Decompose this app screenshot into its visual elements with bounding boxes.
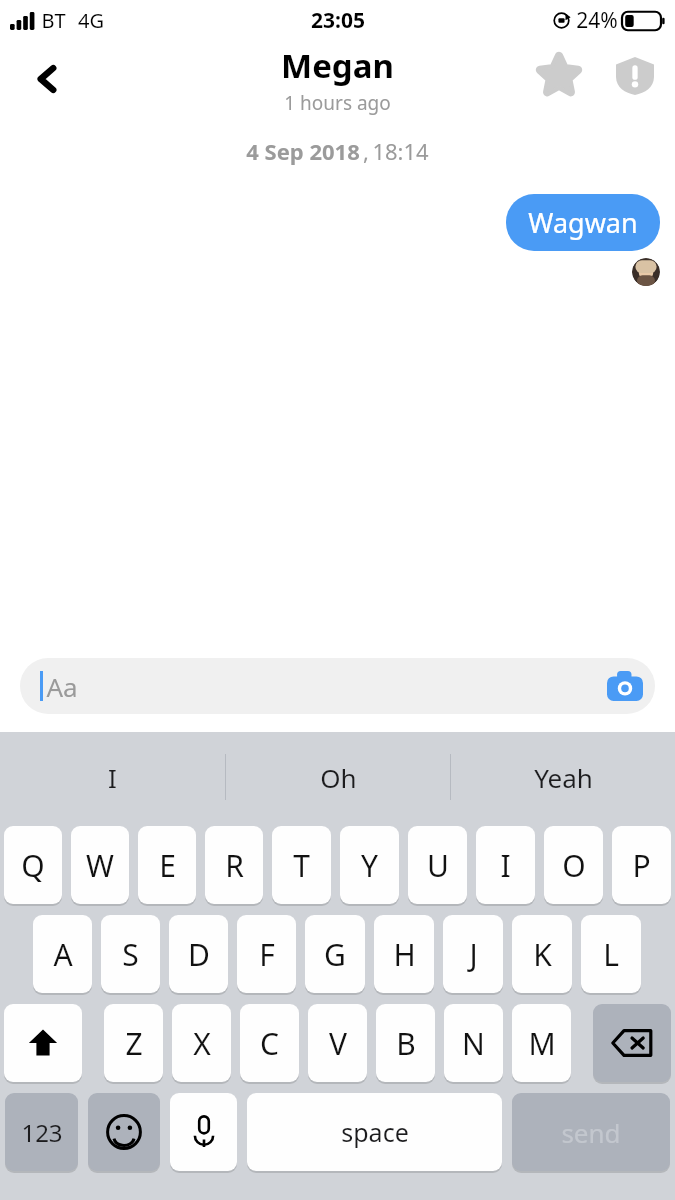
button[interactable]: Back	[22, 53, 74, 105]
button[interactable]: S	[101, 915, 160, 993]
button[interactable]: X	[172, 1004, 231, 1082]
staticText: T	[293, 845, 310, 886]
staticText: Aa	[46, 669, 78, 704]
button[interactable]: M	[512, 1004, 571, 1082]
staticText: S	[122, 934, 139, 975]
staticText: X	[193, 1023, 211, 1064]
button[interactable]: T	[272, 826, 331, 904]
staticText: Z	[125, 1023, 143, 1064]
staticText: 123	[21, 1116, 63, 1149]
button[interactable]: P	[612, 826, 671, 904]
staticText: 18:14	[372, 136, 429, 166]
staticText: 23:05	[311, 6, 365, 35]
staticText: C	[260, 1023, 279, 1064]
staticText: send	[561, 1115, 621, 1150]
button[interactable]: J	[443, 915, 503, 993]
staticText: 4G	[78, 7, 104, 34]
button[interactable]: A	[33, 915, 92, 993]
staticText: Yeah	[534, 760, 593, 795]
button[interactable]: B	[376, 1004, 435, 1082]
button[interactable]: R	[205, 826, 263, 904]
button[interactable]: Camera	[603, 664, 647, 708]
staticText: Oh	[320, 760, 357, 795]
button[interactable]: Z	[104, 1004, 163, 1082]
button[interactable]: I	[0, 732, 225, 822]
staticText: Q	[21, 845, 45, 886]
staticText: Megan	[281, 43, 394, 88]
staticText: Wagwan	[528, 204, 638, 241]
staticText: N	[462, 1023, 485, 1064]
button[interactable]: Aa	[20, 658, 655, 714]
button[interactable]: Wagwan	[506, 194, 660, 251]
staticText: BT	[41, 7, 66, 34]
button[interactable]: Favourite	[531, 48, 587, 104]
staticText: Y	[361, 845, 378, 886]
staticText: V	[329, 1023, 347, 1064]
button[interactable]: Q	[4, 826, 62, 904]
staticText: F	[259, 934, 275, 975]
button[interactable]: Emoji	[88, 1093, 160, 1171]
button[interactable]: K	[512, 915, 572, 993]
button[interactable]: Report	[607, 48, 663, 104]
staticText: E	[159, 845, 176, 886]
button[interactable]: Backspace	[593, 1004, 671, 1082]
staticText: P	[632, 845, 651, 886]
button[interactable]: Voice input	[170, 1093, 237, 1171]
button[interactable]: Oh	[226, 732, 450, 822]
button[interactable]: V	[308, 1004, 367, 1082]
staticText: W	[86, 845, 114, 886]
staticText: G	[324, 934, 346, 975]
button[interactable]: Shift	[4, 1004, 82, 1082]
button[interactable]: L	[581, 915, 641, 993]
button[interactable]: Y	[340, 826, 399, 904]
button[interactable]: C	[240, 1004, 299, 1082]
button[interactable]: U	[408, 826, 467, 904]
button[interactable]: F	[237, 915, 296, 993]
button[interactable]: 123	[5, 1093, 78, 1171]
staticText: R	[225, 845, 244, 886]
button[interactable]: O	[544, 826, 603, 904]
button[interactable]: N	[444, 1004, 503, 1082]
button[interactable]: space	[247, 1093, 502, 1171]
staticText: O	[562, 845, 586, 886]
button[interactable]: G	[305, 915, 365, 993]
staticText: B	[396, 1023, 416, 1064]
staticText: J	[469, 934, 478, 975]
staticText: L	[603, 934, 619, 975]
staticText: 1 hours ago	[284, 90, 391, 116]
staticText: H	[393, 934, 416, 975]
staticText: I	[108, 760, 117, 795]
staticText: A	[53, 934, 73, 975]
staticText: space	[341, 1115, 409, 1149]
staticText: ,	[360, 136, 372, 166]
staticText: U	[427, 845, 449, 886]
staticText: K	[533, 934, 552, 975]
staticText: 4 Sep 2018	[246, 136, 360, 166]
button[interactable]: send	[512, 1093, 670, 1171]
button[interactable]: D	[169, 915, 228, 993]
button[interactable]: I	[476, 826, 535, 904]
button[interactable]: H	[374, 915, 434, 993]
button[interactable]: Megan	[281, 43, 394, 116]
staticText: D	[188, 934, 210, 975]
staticText: I	[500, 845, 511, 886]
staticText: M	[528, 1023, 556, 1064]
button[interactable]: Yeah	[451, 732, 675, 822]
staticText: 24%	[576, 6, 618, 35]
button[interactable]: W	[71, 826, 129, 904]
button[interactable]: E	[138, 826, 196, 904]
